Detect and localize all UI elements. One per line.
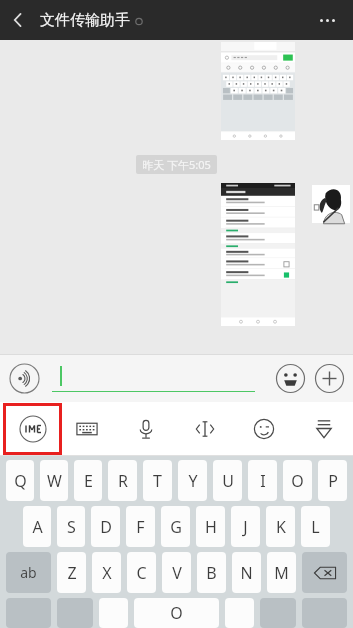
staticText: N: [240, 562, 253, 584]
button[interactable]: Voice: [125, 408, 167, 450]
staticText: 昨天 下午5:05: [142, 157, 211, 172]
staticText: F: [136, 516, 145, 538]
staticText: V: [172, 562, 182, 584]
staticText: Z: [67, 562, 77, 584]
button[interactable]: [52, 362, 255, 394]
staticText: O: [170, 602, 183, 624]
staticText: G: [170, 516, 182, 538]
button[interactable]: C: [127, 552, 156, 593]
staticText: 文件传输助手: [40, 11, 130, 30]
button[interactable]: O: [283, 460, 312, 501]
button[interactable]: N: [232, 552, 261, 593]
button[interactable]: D: [91, 506, 120, 547]
button[interactable]: More options: [316, 15, 339, 26]
staticText: Y: [188, 470, 198, 492]
button[interactable]: H: [196, 506, 225, 547]
button[interactable]: Avatar: [312, 185, 350, 223]
button[interactable]: K: [266, 506, 295, 547]
button[interactable]: W: [40, 460, 68, 501]
staticText: C: [136, 562, 147, 584]
staticText: L: [311, 516, 320, 538]
button[interactable]: T: [143, 460, 172, 501]
button[interactable]: F: [126, 506, 155, 547]
staticText: O: [291, 470, 304, 492]
button[interactable]: Emoji: [275, 363, 306, 394]
button[interactable]: Q: [6, 460, 34, 501]
button[interactable]: X: [92, 552, 121, 593]
button[interactable]: ab: [6, 552, 51, 593]
button[interactable]: Keyboard: [66, 408, 108, 450]
staticText: P: [328, 470, 338, 492]
button[interactable]: M: [267, 552, 296, 593]
button[interactable]: S: [57, 506, 85, 547]
button[interactable]: Backspace: [302, 552, 347, 593]
staticText: K: [276, 516, 286, 538]
button[interactable]: V: [162, 552, 191, 593]
staticText: H: [205, 516, 217, 538]
button[interactable]: Z: [57, 552, 86, 593]
button[interactable]: R: [108, 460, 137, 501]
button[interactable]: Move cursor: [184, 408, 226, 450]
button[interactable]: Switch input method: [3, 403, 62, 455]
staticText: T: [153, 470, 162, 492]
button[interactable]: Emoticons: [243, 408, 285, 450]
staticText: ab: [20, 563, 37, 582]
button[interactable]: I: [248, 460, 277, 501]
staticText: Q: [14, 470, 27, 492]
staticText: U: [222, 470, 234, 492]
staticText: A: [32, 516, 43, 538]
button[interactable]: [221, 183, 295, 326]
staticText: S: [67, 516, 76, 538]
button[interactable]: A: [23, 506, 51, 547]
staticText: M: [274, 562, 289, 584]
staticText: D: [100, 516, 112, 538]
button[interactable]: U: [213, 460, 242, 501]
button[interactable]: G: [161, 506, 190, 547]
button[interactable]: B: [197, 552, 226, 593]
staticText: X: [102, 562, 112, 584]
button[interactable]: [99, 598, 128, 628]
button[interactable]: L: [301, 506, 330, 547]
button[interactable]: Back: [0, 2, 36, 38]
staticText: W: [47, 470, 62, 492]
button[interactable]: P: [318, 460, 347, 501]
button[interactable]: More functions: [314, 363, 345, 394]
staticText: I: [260, 470, 266, 492]
staticText: B: [206, 562, 217, 584]
button[interactable]: O: [134, 598, 219, 628]
staticText: R: [118, 470, 128, 492]
button[interactable]: [221, 42, 295, 140]
staticText: J: [243, 516, 248, 538]
button[interactable]: Hide keyboard: [303, 408, 345, 450]
staticText: E: [84, 470, 93, 492]
button[interactable]: [225, 598, 254, 628]
button[interactable]: J: [231, 506, 260, 547]
button[interactable]: Y: [178, 460, 207, 501]
button[interactable]: Voice input: [9, 363, 40, 394]
button[interactable]: E: [74, 460, 102, 501]
